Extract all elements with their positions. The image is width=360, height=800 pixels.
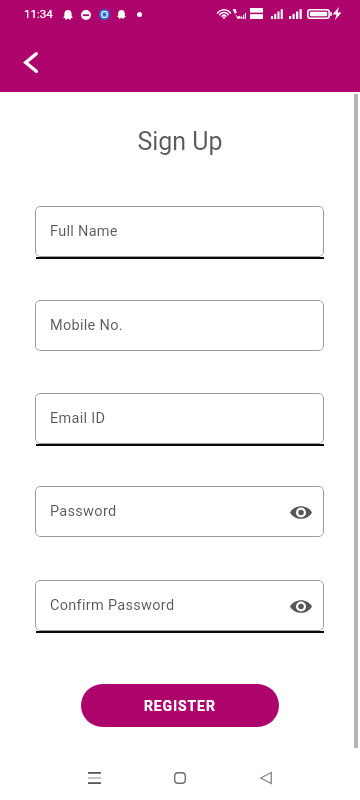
button[interactable]: Password	[35, 486, 324, 537]
button[interactable]: Back	[7, 38, 55, 86]
staticText: Sign Up	[137, 127, 223, 156]
staticText: Confirm Password	[50, 597, 175, 614]
button[interactable]: Full Name	[35, 206, 324, 257]
staticText: Email ID	[50, 410, 106, 427]
staticText: Full Name	[50, 223, 118, 240]
button[interactable]: Mobile No.	[35, 300, 324, 351]
button[interactable]: REGISTER	[81, 684, 279, 727]
button[interactable]: Show password	[286, 497, 316, 527]
button[interactable]: Email ID	[35, 393, 324, 444]
staticText: 11:34	[24, 7, 53, 20]
button[interactable]: Recents	[62, 746, 126, 800]
button[interactable]: Show password	[286, 591, 316, 621]
staticText: REGISTER	[144, 698, 216, 714]
staticText: Mobile No.	[50, 317, 123, 334]
staticText: Password	[50, 503, 117, 520]
button[interactable]: Confirm Password	[35, 580, 324, 631]
button[interactable]: Home	[148, 746, 212, 800]
button[interactable]: Back	[234, 746, 298, 800]
